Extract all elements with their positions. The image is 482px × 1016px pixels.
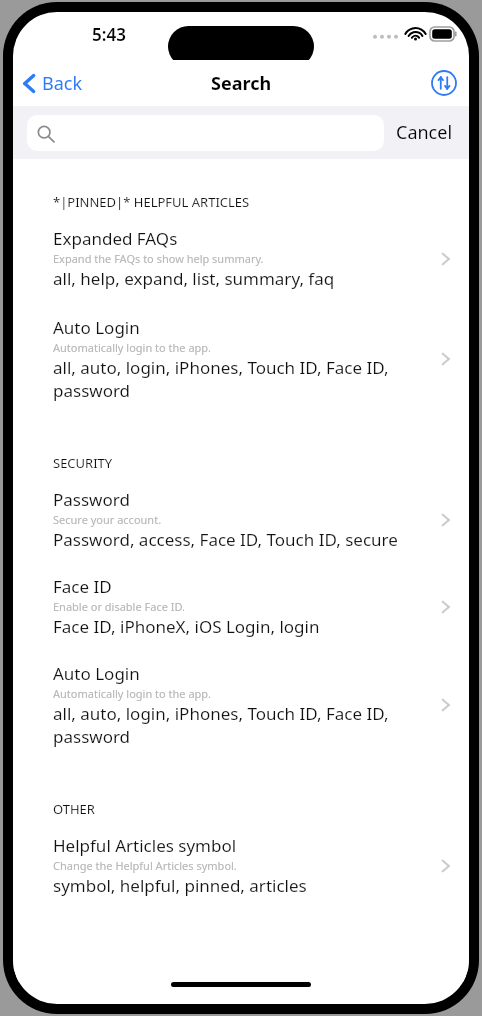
staticText: Automatically login to the app. <box>53 686 212 701</box>
staticText: Password <box>53 488 130 511</box>
staticText: SECURITY <box>53 454 113 472</box>
staticText: all, auto, login, iPhones, Touch ID, Fac… <box>53 702 431 748</box>
staticText: *|PINNED|* HELPFUL ARTICLES <box>53 193 250 211</box>
button[interactable]: Back <box>13 65 93 102</box>
button[interactable]: Cancel <box>384 114 455 151</box>
staticText: OTHER <box>53 800 95 818</box>
button[interactable]: Expanded FAQs <box>13 227 469 290</box>
staticText: Expand the FAQs to show help summary. <box>53 251 264 266</box>
button[interactable] <box>27 115 384 151</box>
staticText: Expanded FAQs <box>53 227 178 250</box>
staticText: Face ID <box>53 575 112 598</box>
button[interactable]: Auto Login <box>13 316 469 402</box>
staticText: Secure your account. <box>53 512 162 527</box>
staticText: Auto Login <box>53 316 140 339</box>
staticText: Search <box>211 71 272 96</box>
staticText: Password, access, Face ID, Touch ID, sec… <box>53 528 398 551</box>
staticText: Back <box>42 71 83 96</box>
staticText: Helpful Articles symbol <box>53 834 237 857</box>
staticText: Face ID, iPhoneX, iOS Login, login <box>53 615 320 638</box>
staticText: symbol, helpful, pinned, articles <box>53 874 307 897</box>
button[interactable]: Password <box>13 488 469 551</box>
staticText: Automatically login to the app. <box>53 340 212 355</box>
button[interactable]: Face ID <box>13 575 469 638</box>
staticText: Cancel <box>396 120 453 145</box>
staticText: 5:43 <box>92 23 126 46</box>
button[interactable]: Auto Login <box>13 662 469 748</box>
staticText: all, auto, login, iPhones, Touch ID, Fac… <box>53 356 431 402</box>
staticText: Auto Login <box>53 662 140 685</box>
staticText: Enable or disable Face ID. <box>53 599 186 614</box>
button[interactable]: Helpful Articles symbol <box>13 834 469 897</box>
staticText: all, help, expand, list, summary, faq <box>53 267 335 290</box>
button[interactable]: Sort <box>431 70 469 96</box>
staticText: Change the Helpful Articles symbol. <box>53 858 237 873</box>
